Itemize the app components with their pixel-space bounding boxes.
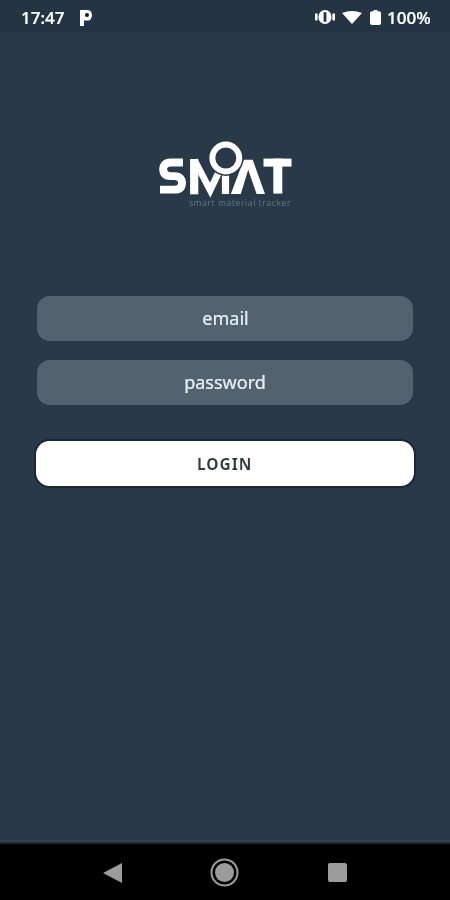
staticText: 17:47 xyxy=(21,6,65,29)
button[interactable]: Home xyxy=(168,845,281,900)
button[interactable]: LOGIN xyxy=(36,441,414,486)
staticText: LOGIN xyxy=(197,453,253,474)
staticText: smart material tracker xyxy=(189,197,292,209)
button[interactable]: password xyxy=(37,360,413,405)
button[interactable]: email xyxy=(37,296,413,341)
staticText: email xyxy=(202,306,249,331)
staticText: 100% xyxy=(387,6,431,29)
button[interactable]: Back xyxy=(56,845,168,900)
staticText: password xyxy=(184,370,266,395)
button[interactable]: Recents xyxy=(281,845,394,900)
